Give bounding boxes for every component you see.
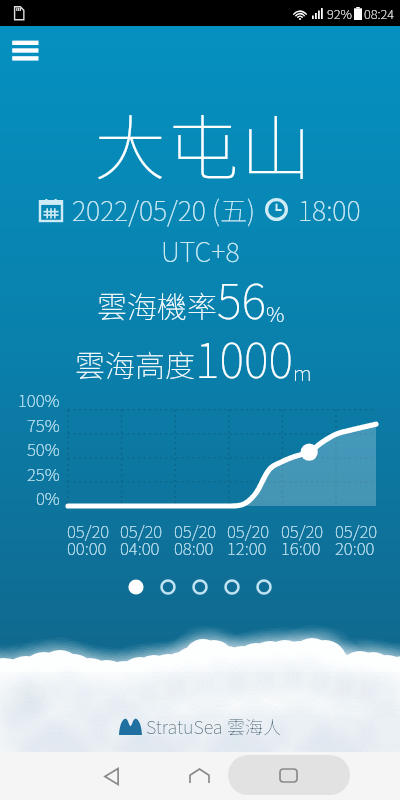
staticText: 05/20: [120, 518, 163, 543]
button[interactable]: Back: [87, 752, 135, 800]
staticText: UTC+8: [161, 231, 240, 270]
staticText: 75%: [27, 412, 60, 437]
staticText: 05/20: [174, 518, 217, 543]
staticText: 92%: [327, 4, 352, 23]
button[interactable]: Recent apps: [228, 755, 350, 795]
staticText: 1000: [195, 323, 293, 391]
button[interactable]: Page 4: [216, 572, 248, 602]
staticText: 05/20: [67, 518, 110, 543]
staticText: 05/20: [227, 518, 270, 543]
staticText: 04:00: [120, 535, 160, 560]
staticText: 大屯山: [94, 92, 314, 195]
staticText: 50%: [27, 436, 60, 461]
staticText: 20:00: [335, 535, 375, 560]
staticText: 05/20: [281, 518, 324, 543]
staticText: 16:00: [281, 535, 321, 560]
staticText: 雲海高度: [75, 342, 195, 385]
staticText: m: [293, 357, 312, 387]
staticText: StratuSea: [146, 713, 223, 739]
staticText: 08:24: [364, 4, 395, 23]
staticText: 12:00: [227, 535, 267, 560]
button[interactable]: Menu: [4, 32, 46, 70]
staticText: 18:00: [298, 190, 361, 229]
button[interactable]: Page 3: [184, 572, 216, 602]
button[interactable]: Page 2: [152, 572, 184, 602]
button[interactable]: Page 1: [120, 572, 152, 602]
staticText: 雲海人: [227, 713, 281, 739]
staticText: 2022/05/20 (五): [72, 190, 256, 229]
button[interactable]: Page 5: [248, 572, 280, 602]
staticText: 100%: [18, 387, 60, 412]
staticText: 00:00: [67, 535, 107, 560]
staticText: 25%: [27, 461, 60, 486]
button[interactable]: Home: [175, 752, 223, 800]
staticText: 08:00: [174, 535, 214, 560]
staticText: 56: [217, 264, 266, 332]
staticText: 0%: [36, 485, 60, 510]
staticText: 雲海機率: [97, 283, 217, 326]
staticText: %: [266, 298, 285, 328]
staticText: 05/20: [335, 518, 378, 543]
